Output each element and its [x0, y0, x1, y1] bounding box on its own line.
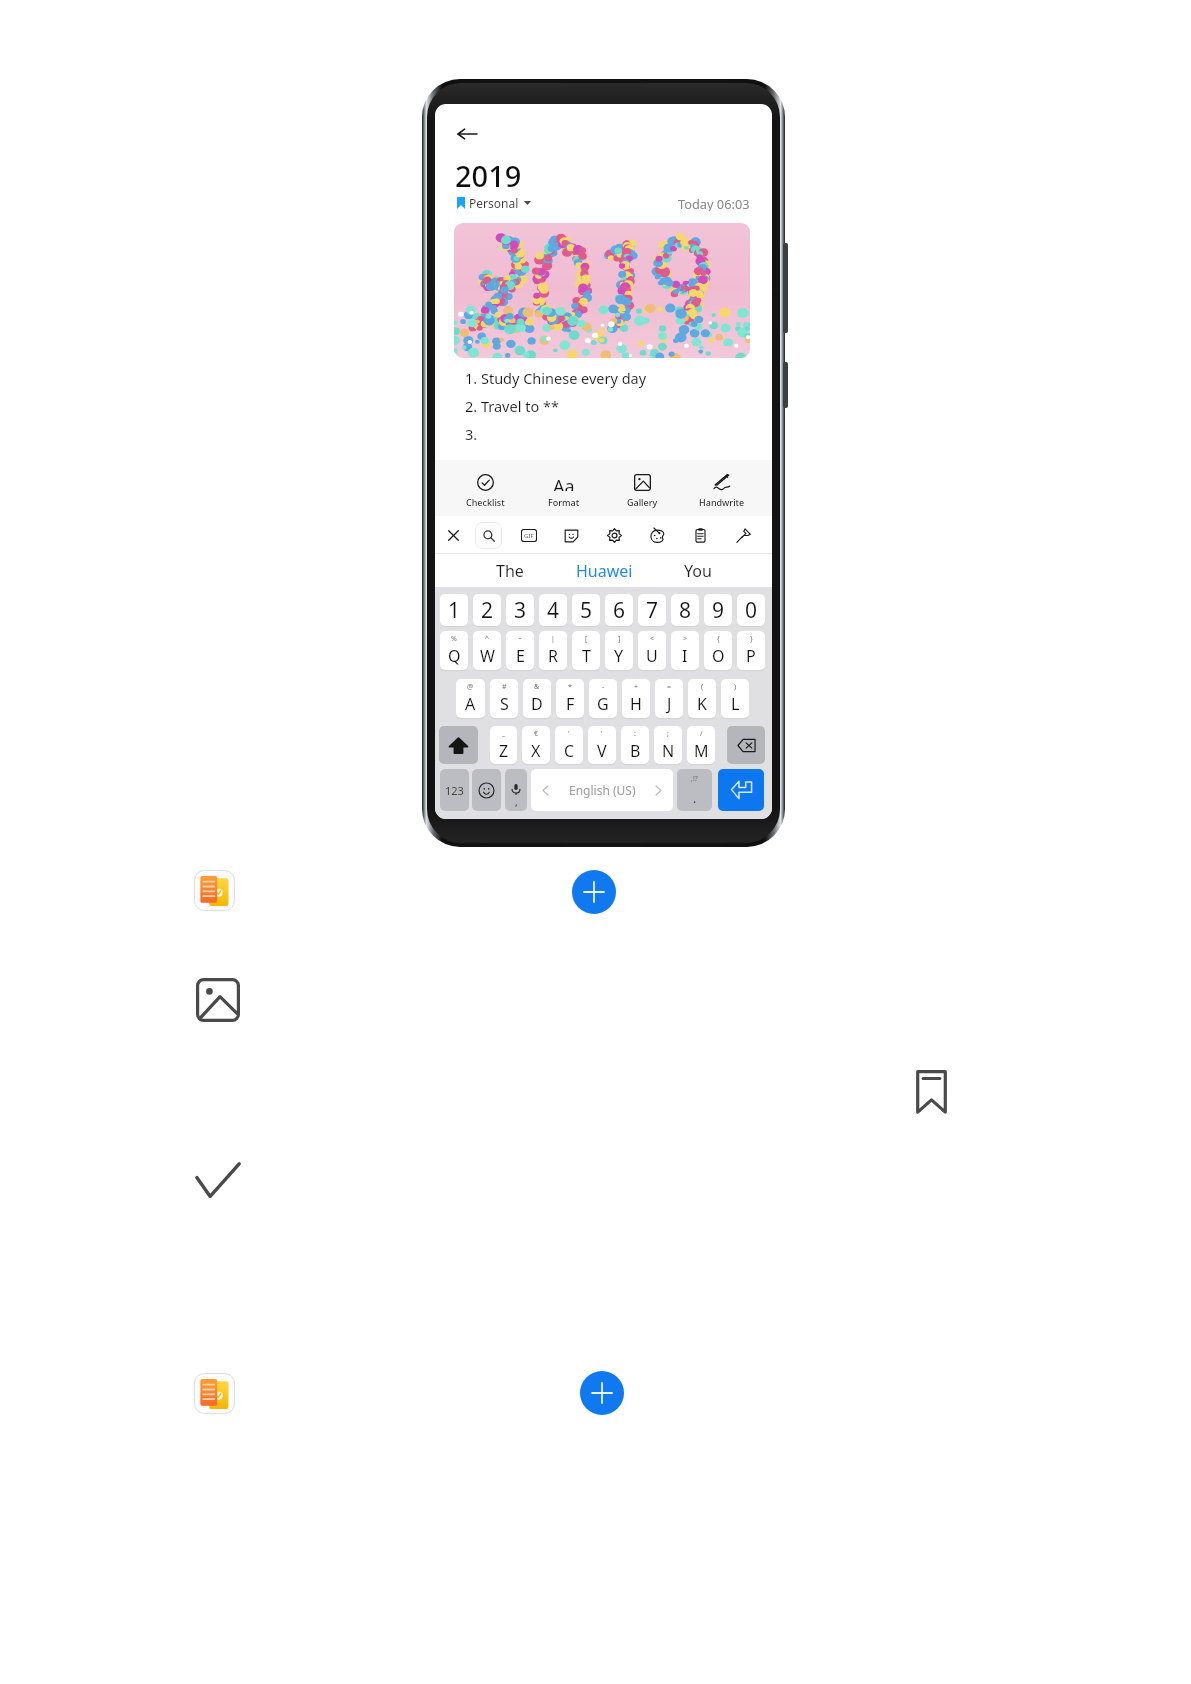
staticText: 1. Study Chinese every day — [465, 368, 647, 388]
button[interactable]: ) — [721, 679, 749, 718]
button[interactable]: Theme — [640, 517, 674, 553]
staticText: Handwrite — [699, 496, 745, 508]
button[interactable]: Personal — [457, 195, 531, 211]
button[interactable]: Huawei — [557, 554, 651, 587]
staticText: E — [516, 645, 525, 667]
button[interactable]: Gallery — [196, 978, 240, 1022]
button[interactable]: 3 — [506, 594, 534, 626]
button[interactable]: > — [671, 631, 699, 670]
button[interactable]: Sticker — [554, 517, 588, 553]
button[interactable]: Note image — [454, 223, 750, 358]
staticText: D — [531, 693, 543, 715]
button[interactable]: @ — [456, 679, 485, 718]
button[interactable]: ,!? — [677, 769, 712, 811]
button[interactable]: Voice input — [505, 769, 527, 811]
button[interactable]: English (US) — [531, 769, 673, 811]
button[interactable]: Backspace — [727, 726, 765, 764]
button[interactable]: Pin — [726, 517, 760, 553]
staticText: 4 — [547, 596, 560, 625]
button[interactable]: € — [522, 726, 550, 764]
button[interactable]: GIF — [512, 517, 546, 553]
button[interactable]: = — [655, 679, 683, 718]
staticText: ) — [734, 682, 737, 692]
button[interactable]: } — [737, 631, 765, 670]
button[interactable]: 6 — [605, 594, 633, 626]
staticText: + — [634, 682, 639, 692]
staticText: 0 — [745, 596, 758, 625]
staticText: / — [700, 729, 703, 739]
staticText: : — [634, 729, 636, 739]
button[interactable]: + — [622, 679, 650, 718]
button[interactable]: ; — [654, 726, 682, 764]
button[interactable]: ~ — [506, 631, 534, 670]
button[interactable]: Handwrite — [682, 463, 761, 519]
button[interactable]: ( — [688, 679, 716, 718]
button[interactable]: Done — [195, 1162, 241, 1199]
button[interactable]: ' — [555, 726, 583, 764]
button[interactable]: _ — [490, 726, 517, 764]
button[interactable]: - — [589, 679, 617, 718]
staticText: , — [515, 795, 518, 809]
button[interactable]: Search — [471, 517, 505, 553]
button[interactable]: 7 — [638, 594, 666, 626]
button[interactable]: Notepad app — [194, 870, 235, 911]
staticText: 8 — [679, 596, 692, 625]
button[interactable]: { — [704, 631, 732, 670]
button[interactable]: : — [621, 726, 649, 764]
staticText: ' — [568, 729, 570, 739]
button[interactable]: Notepad app — [194, 1373, 235, 1414]
button[interactable]: * — [556, 679, 584, 718]
button[interactable]: ^ — [473, 631, 501, 670]
button[interactable]: Emoji — [472, 769, 501, 811]
staticText: F — [566, 693, 575, 715]
button[interactable]: 123 — [440, 769, 469, 811]
button[interactable]: 9 — [704, 594, 732, 626]
staticText: 3. — [465, 424, 478, 444]
button[interactable]: Checklist — [446, 463, 524, 519]
staticText: Z — [499, 740, 509, 762]
button[interactable]: | — [539, 631, 567, 670]
staticText: ~ — [518, 634, 523, 644]
button[interactable]: Settings — [597, 517, 631, 553]
staticText: 123 — [445, 783, 464, 798]
button[interactable]: Bookmark — [914, 1067, 949, 1114]
staticText: ] — [618, 634, 621, 644]
button[interactable]: [ — [572, 631, 600, 670]
button[interactable]: You — [651, 554, 745, 587]
button[interactable]: Back — [449, 115, 486, 152]
staticText: 1 — [448, 596, 461, 625]
button[interactable]: & — [523, 679, 551, 718]
button[interactable]: 5 — [572, 594, 600, 626]
button[interactable]: 1 — [440, 594, 468, 626]
button[interactable]: ] — [605, 631, 633, 670]
button[interactable]: 8 — [671, 594, 699, 626]
staticText: } — [750, 634, 753, 644]
button[interactable]: # — [490, 679, 518, 718]
button[interactable]: Aa — [524, 463, 603, 519]
button[interactable]: The — [462, 554, 557, 587]
button[interactable]: % — [440, 631, 468, 670]
staticText: { — [717, 634, 720, 644]
button[interactable]: Gallery — [603, 463, 682, 519]
staticText: 2. Travel to ** — [465, 396, 559, 416]
button[interactable]: Shift — [439, 726, 478, 764]
button[interactable]: Enter — [718, 769, 764, 811]
button[interactable]: Clipboard — [683, 517, 717, 553]
staticText: H — [630, 693, 642, 715]
staticText: The — [496, 560, 524, 582]
staticText: A — [465, 693, 476, 715]
button[interactable]: 0 — [737, 594, 765, 626]
staticText: J — [667, 693, 672, 715]
button[interactable]: < — [638, 631, 666, 670]
staticText: S — [500, 693, 509, 715]
button[interactable]: Close — [436, 517, 470, 553]
button[interactable]: 4 — [539, 594, 567, 626]
button[interactable]: ' — [588, 726, 616, 764]
button[interactable]: Add — [580, 1371, 624, 1415]
button[interactable]: / — [687, 726, 715, 764]
staticText: W — [480, 645, 495, 667]
button[interactable]: Add — [572, 870, 616, 914]
button[interactable]: 2 — [473, 594, 501, 626]
staticText: I — [682, 645, 688, 667]
staticText: 5 — [580, 596, 593, 625]
